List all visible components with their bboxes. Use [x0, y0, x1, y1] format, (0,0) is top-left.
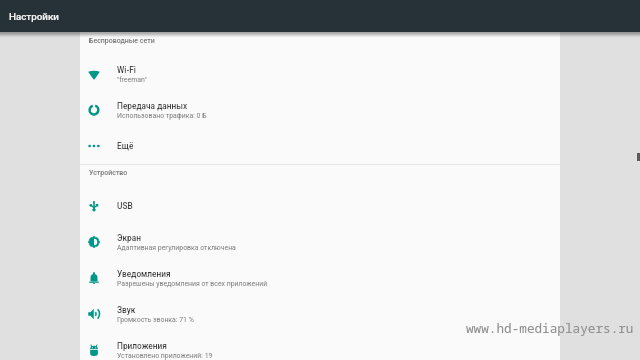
staticText: Беспроводные сети: [89, 37, 155, 45]
button[interactable]: USB: [80, 188, 560, 224]
staticText: Разрешены уведомления от всех приложений: [117, 280, 268, 288]
staticText: Передача данных: [117, 101, 188, 111]
button[interactable]: Звук: [80, 296, 560, 332]
staticText: "freeman": [117, 76, 147, 84]
staticText: Громкость звонка: 71 %: [117, 316, 194, 324]
button[interactable]: Wi-Fi: [80, 56, 560, 92]
staticText: USB: [117, 201, 133, 211]
staticText: Использовано трафика: 0 Б: [117, 112, 207, 120]
button[interactable]: Уведомления: [80, 260, 560, 296]
staticText: Wi-Fi: [117, 65, 136, 75]
button[interactable]: Приложения: [80, 332, 560, 360]
staticText: Ещё: [117, 141, 134, 151]
staticText: Уведомления: [117, 269, 171, 279]
staticText: Экран: [117, 233, 141, 243]
button[interactable]: Ещё: [80, 128, 560, 164]
staticText: Устройство: [89, 169, 128, 177]
button[interactable]: Экран: [80, 224, 560, 260]
staticText: Приложения: [117, 341, 167, 351]
staticText: Настройки: [9, 11, 59, 22]
staticText: Звук: [117, 305, 136, 315]
staticText: Адаптивная регулировка отключена: [117, 244, 236, 252]
staticText: www.hd-mediaplayers.ru: [466, 319, 634, 336]
staticText: Установлено приложений: 19: [117, 352, 213, 360]
button[interactable]: Передача данных: [80, 92, 560, 128]
